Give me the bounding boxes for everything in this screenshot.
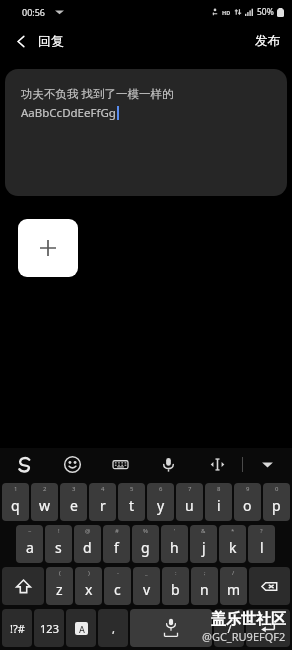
staticText: ; [204,569,206,577]
staticText: , [112,621,115,636]
staticText: ' [174,527,176,535]
staticText: @GC_RU9EFQF2 [202,629,286,644]
staticText: b [171,580,180,599]
staticText: u [185,496,194,515]
staticText: f [114,538,119,557]
staticText: z [56,580,63,599]
staticText: 9 [246,485,250,493]
staticText: # [115,527,119,535]
staticText: ! [58,527,60,535]
staticText: % [143,527,148,535]
staticText: : [175,569,177,577]
staticText: HD [222,9,231,16]
button[interactable]: ~ [16,525,43,563]
button[interactable]: Language [66,609,96,647]
staticText: 3 [72,485,76,493]
button[interactable]: Add photo [18,219,78,277]
button[interactable]: * [219,525,246,563]
button[interactable]: 4 [89,483,116,521]
button[interactable]: Emoji [48,448,96,480]
button[interactable]: Samsung keyboard [0,448,48,480]
staticText: 00:56 [22,6,46,18]
staticText: q [11,496,20,515]
staticText: 4 [101,485,105,493]
button[interactable]: @ [74,525,101,563]
staticText: * [231,527,235,535]
button[interactable]: 发布 [247,29,288,53]
button[interactable]: / [220,567,247,605]
staticText: n [200,580,209,599]
staticText: a [26,538,34,557]
staticText: A [79,623,85,635]
staticText: 1 [14,485,18,493]
staticText: ? [260,527,263,535]
button[interactable]: 5 [118,483,145,521]
button[interactable]: # [103,525,130,563]
button[interactable]: , [98,609,128,647]
staticText: h [170,538,179,557]
staticText: !?# [10,621,25,636]
button[interactable]: ( [46,567,73,605]
staticText: t [129,496,135,515]
staticText: @ [85,527,91,535]
staticText: m [227,580,241,599]
button[interactable]: Voice input [144,448,193,480]
button[interactable]: 1 [2,483,29,521]
staticText: 7 [188,485,192,493]
staticText: 0 [275,485,279,493]
staticText: e [70,496,78,515]
button[interactable]: Keyboard settings [96,448,144,480]
button[interactable]: Enter [246,609,290,647]
button[interactable]: % [132,525,159,563]
button[interactable]: !?# [2,609,32,647]
staticText: ) [88,569,90,577]
staticText: ~ [28,527,32,535]
button[interactable]: & [190,525,217,563]
button[interactable]: 123 [34,609,64,647]
button[interactable]: 9 [234,483,261,521]
staticText: l [260,538,264,557]
button[interactable]: - [104,567,131,605]
button[interactable]: ) [75,567,102,605]
button[interactable]: / [214,609,244,647]
button[interactable]: 0 [263,483,290,521]
staticText: / [232,569,235,577]
staticText: i [217,496,221,515]
staticText: d [83,538,92,557]
button[interactable]: 7 [176,483,203,521]
button[interactable]: Move cursor [193,448,242,480]
button[interactable]: 3 [60,483,87,521]
button[interactable]: : [162,567,189,605]
staticText: AaBbCcDdEeFfGg [21,105,116,121]
button[interactable]: Shift [2,567,44,605]
button[interactable]: Back [6,26,36,56]
button[interactable]: _ [133,567,160,605]
button[interactable]: ? [248,525,275,563]
staticText: 8 [217,485,221,493]
staticText: & [201,527,206,535]
button[interactable]: Backspace [249,567,290,605]
staticText: j [202,538,206,557]
button[interactable]: ; [191,567,218,605]
button[interactable]: ' [161,525,188,563]
staticText: 发布 [255,33,280,49]
staticText: p [272,496,281,515]
staticText: s [55,538,62,557]
staticText: o [243,496,252,515]
button[interactable]: 功夫不负我 找到了一模一样的 [5,69,287,196]
staticText: y [157,496,165,515]
button[interactable]: Collapse keyboard [243,448,292,480]
button[interactable]: 2 [31,483,58,521]
staticText: 123 [40,621,59,636]
staticText: 回复 [38,33,64,49]
staticText: v [143,580,151,599]
staticText: 50% [257,6,274,18]
staticText: r [100,496,106,515]
button[interactable]: ! [45,525,72,563]
button[interactable]: 6 [147,483,174,521]
staticText: 2 [43,485,47,493]
button[interactable]: Space [130,609,212,647]
button[interactable]: 8 [205,483,232,521]
staticText: 功夫不负我 找到了一模一样的 [21,86,174,102]
staticText: ( [59,569,61,577]
